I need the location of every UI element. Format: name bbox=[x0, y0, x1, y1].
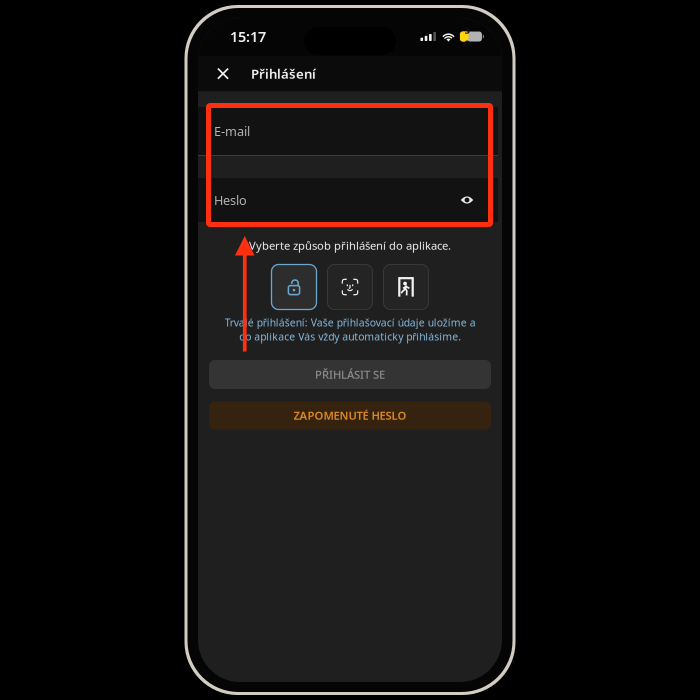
staticText: 30 bbox=[465, 24, 470, 49]
staticText: Trvalé přihlášení: Vaše přihlašovací úda… bbox=[224, 315, 475, 344]
button[interactable]: ZAPOMENUTÉ HESLO bbox=[209, 401, 491, 429]
button[interactable]: Vstup bez přihlášení bbox=[383, 264, 428, 309]
staticText: PŘIHLÁSIT SE bbox=[315, 367, 385, 382]
button[interactable]: PŘIHLÁSIT SE bbox=[209, 360, 491, 389]
button[interactable]: Přihlásit přes Face ID bbox=[327, 264, 372, 309]
staticText: Přihlášení bbox=[251, 65, 316, 83]
button[interactable]: Zobrazit heslo bbox=[456, 189, 478, 211]
staticText: E-mail bbox=[214, 122, 250, 140]
staticText: 15:17 bbox=[230, 27, 266, 46]
staticText: ZAPOMENUTÉ HESLO bbox=[293, 408, 406, 423]
staticText: Heslo bbox=[214, 191, 247, 209]
button[interactable]: Přihlásit heslem bbox=[271, 264, 316, 309]
staticText: Vyberte způsob přihlášení do aplikace. bbox=[249, 238, 451, 253]
button[interactable]: Zavřít bbox=[210, 56, 236, 91]
